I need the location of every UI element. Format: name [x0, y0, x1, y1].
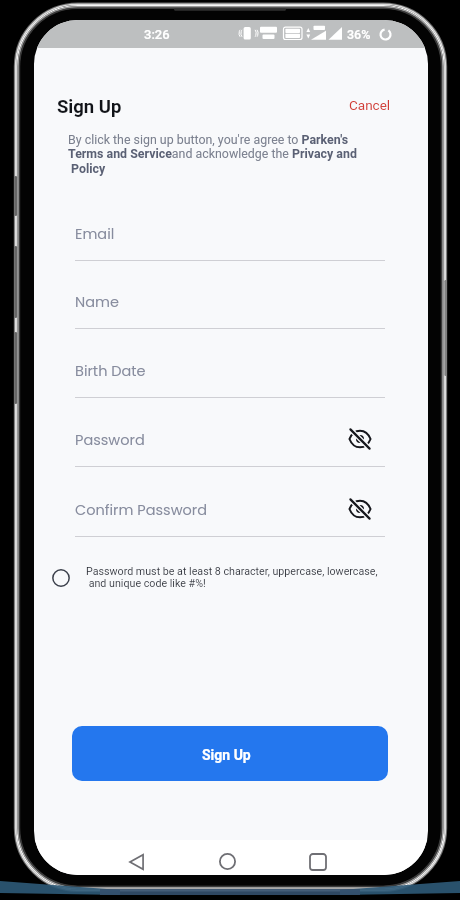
staticText: Cancel: [349, 97, 391, 113]
button[interactable]: Back: [119, 844, 155, 875]
staticText: Confirm Password: [75, 500, 208, 520]
button[interactable]: Show password: [346, 495, 374, 523]
staticText: Name: [75, 292, 119, 312]
button[interactable]: Show password: [346, 425, 374, 453]
staticText: By click the sign up button, you're agre…: [68, 132, 368, 177]
button[interactable]: Sign Up: [72, 726, 388, 781]
staticText: Sign Up: [202, 747, 251, 763]
button[interactable]: Recent apps: [300, 844, 336, 875]
staticText: Password must be at least 8 character, u…: [86, 565, 378, 589]
button[interactable]: Accept password rules: [46, 563, 76, 593]
staticText: Email: [75, 224, 115, 244]
staticText: Birth Date: [75, 361, 146, 381]
staticText: 36%: [347, 27, 371, 42]
button[interactable]: Home: [209, 844, 245, 875]
staticText: Sign Up: [57, 96, 122, 118]
staticText: Password: [75, 430, 145, 450]
button[interactable]: Cancel: [342, 92, 398, 118]
staticText: 3:26: [144, 27, 170, 42]
